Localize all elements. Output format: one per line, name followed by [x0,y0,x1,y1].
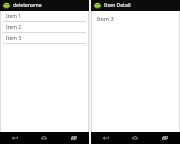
staticText: Item 3 [6,35,22,42]
button[interactable]: Item 3 [1,33,88,44]
other: App icon [3,2,10,9]
button[interactable]: App icon [91,0,180,11]
button[interactable]: Recents [150,132,180,144]
other: App icon [94,2,101,9]
button[interactable]: Item 3 [97,15,179,22]
staticText: Item Detail [104,2,131,9]
button[interactable]: Item 2 [1,22,88,33]
button[interactable]: Recents [59,132,89,144]
button[interactable]: Home [120,132,150,144]
staticText: Item 3 [97,15,114,22]
button[interactable]: App icon [0,0,89,11]
staticText: Item 2 [6,24,22,31]
staticText: deletename [13,2,42,9]
button[interactable]: Back [0,132,29,144]
button[interactable]: Item 1 [1,11,88,22]
button[interactable]: Back [91,132,120,144]
staticText: Item 1 [6,13,22,20]
button[interactable]: Home [29,132,59,144]
